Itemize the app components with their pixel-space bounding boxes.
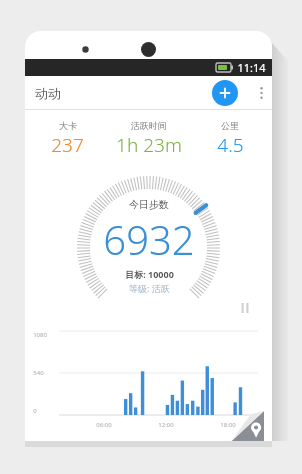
staticText: 公里 [221, 120, 239, 131]
staticText: 6932 [103, 212, 195, 266]
staticText: 18:00 [220, 421, 236, 429]
staticText: 4.5 [217, 132, 244, 158]
staticText: 11:14 [237, 60, 266, 75]
staticText: 12:00 [158, 421, 174, 429]
button[interactable]: 大卡 [31, 120, 104, 158]
staticText: 0 [33, 407, 37, 415]
staticText: 等级: 活跃 [129, 282, 170, 294]
button[interactable]: Pause tracking [236, 299, 254, 317]
staticText: 动动 [35, 85, 61, 101]
button[interactable]: More options [250, 76, 272, 110]
staticText: 今日步数 [129, 198, 169, 211]
staticText: 06:00 [96, 421, 112, 429]
staticText: 活跃时间 [131, 120, 167, 131]
button[interactable]: Add activity [212, 80, 238, 106]
staticText: 目标: 10000 [125, 268, 174, 280]
button[interactable]: 公里 [194, 120, 266, 158]
staticText: 1h 23m [116, 132, 182, 158]
button[interactable]: 活跃时间 [104, 120, 194, 158]
staticText: 大卡 [59, 120, 77, 131]
staticText: 540 [33, 369, 44, 377]
staticText: 1080 [33, 331, 47, 339]
staticText: 237 [51, 132, 84, 158]
